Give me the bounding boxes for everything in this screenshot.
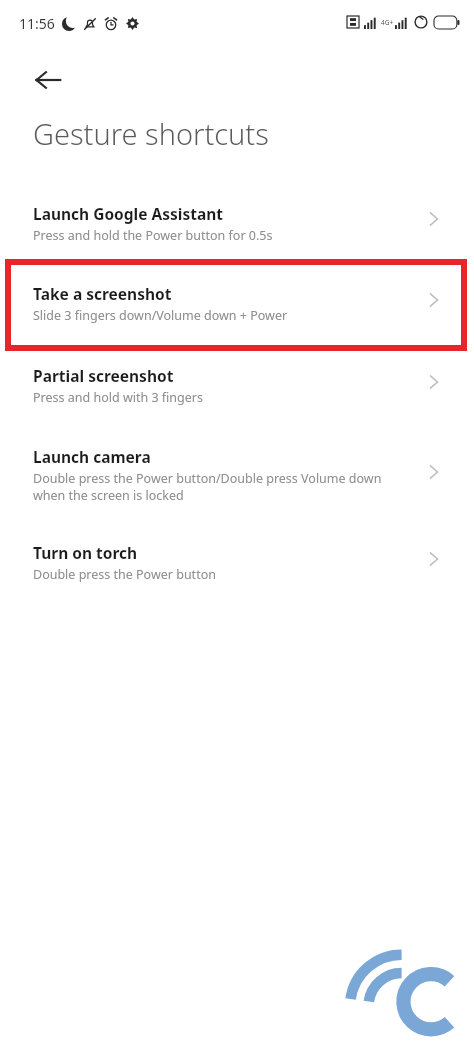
staticText: 11:56	[19, 14, 55, 33]
staticText: Double press the Power button	[33, 566, 216, 583]
staticText: Partial screenshot	[33, 365, 174, 386]
staticText: Turn on torch	[33, 542, 138, 563]
button[interactable]	[0, 269, 474, 329]
other: Open Take a screenshot	[422, 288, 446, 312]
staticText: Launch camera	[33, 446, 151, 467]
other: Open Partial screenshot	[422, 370, 446, 394]
button[interactable]	[0, 189, 474, 249]
staticText: Launch Google Assistant	[33, 203, 224, 224]
button[interactable]	[0, 528, 474, 588]
staticText: 4G+	[381, 18, 394, 27]
staticText: Take a screenshot	[33, 283, 172, 304]
button[interactable]	[0, 351, 474, 411]
staticText: Press and hold the Power button for 0.5s	[33, 227, 273, 244]
staticText: Press and hold with 3 fingers	[33, 389, 203, 406]
button[interactable]	[0, 432, 474, 512]
staticText: Gesture shortcuts	[33, 114, 269, 153]
staticText: Double press the Power button/Double pre…	[33, 470, 382, 504]
other: Open Turn on torch	[422, 547, 446, 571]
button[interactable]: Back	[24, 56, 72, 104]
staticText: Slide 3 fingers down/Volume down + Power	[33, 307, 288, 324]
other: Open Launch Google Assistant	[422, 207, 446, 231]
other: Open Launch camera	[422, 460, 446, 484]
